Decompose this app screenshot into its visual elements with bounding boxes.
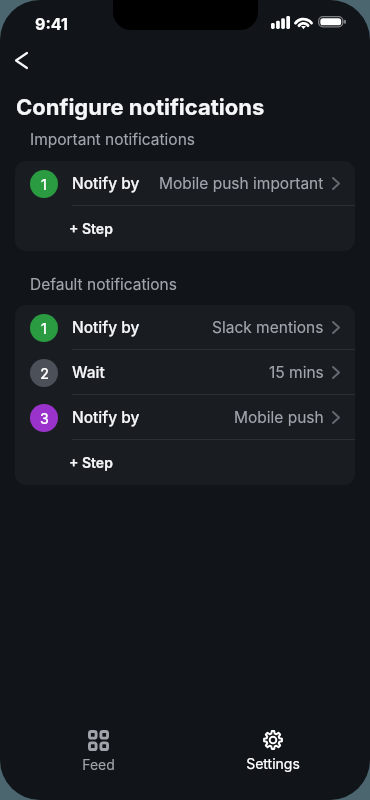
staticText: Slack mentions xyxy=(212,318,324,337)
staticText: + Step xyxy=(69,220,113,237)
staticText: 15 mins xyxy=(269,363,324,382)
staticText: Settings xyxy=(246,755,300,772)
staticText: Mobile push important xyxy=(159,174,324,193)
staticText: 2 xyxy=(40,365,49,382)
staticText: Important notifications xyxy=(30,130,195,149)
staticText: 3 xyxy=(40,410,49,427)
staticText: Configure notifications xyxy=(16,94,265,121)
staticText: Mobile push xyxy=(234,408,324,427)
button[interactable]: 2 xyxy=(15,350,355,395)
staticText: 1 xyxy=(41,320,47,337)
staticText: Notify by xyxy=(72,408,140,427)
staticText: Notify by xyxy=(72,318,140,337)
button[interactable]: Feed xyxy=(54,728,142,775)
staticText: 9:41 xyxy=(35,14,68,33)
button[interactable]: + Step xyxy=(15,206,355,251)
staticText: Wait xyxy=(72,363,105,382)
staticText: Feed xyxy=(82,756,115,773)
button[interactable]: + Step xyxy=(15,440,355,485)
button[interactable]: Settings xyxy=(229,728,317,774)
staticText: + Step xyxy=(69,454,113,471)
button[interactable]: 1 xyxy=(15,305,355,350)
staticText: 1 xyxy=(41,176,47,193)
staticText: Notify by xyxy=(72,174,140,193)
button[interactable]: 1 xyxy=(15,161,355,206)
staticText: Default notifications xyxy=(30,275,177,294)
button[interactable]: Back xyxy=(6,47,36,73)
button[interactable]: 3 xyxy=(15,395,355,440)
